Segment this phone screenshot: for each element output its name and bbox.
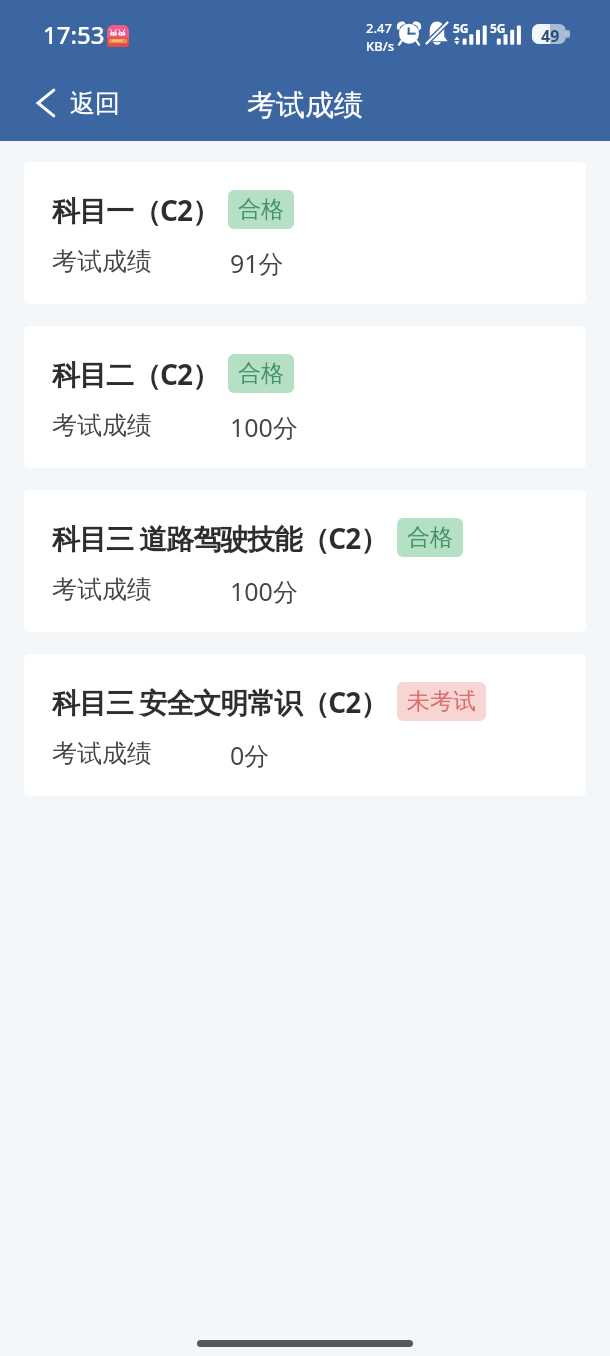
staticText: 49 <box>541 25 560 47</box>
staticText: 考试成绩 <box>52 574 152 605</box>
staticText: 考试成绩 <box>52 246 152 277</box>
staticText: KB/s <box>366 37 395 55</box>
staticText: 100分 <box>230 410 298 444</box>
other: Back <box>34 88 56 118</box>
staticText: 考试成绩 <box>52 738 152 769</box>
staticText: 5G <box>453 20 469 36</box>
staticText: 合格 <box>238 195 284 224</box>
staticText: 返回 <box>70 88 120 119</box>
button[interactable]: 科目一（C2） <box>24 162 586 304</box>
button[interactable]: Back <box>0 65 214 141</box>
staticText: 考试成绩 <box>52 410 152 441</box>
staticText: 科目三 安全文明常识（C2） <box>52 683 388 721</box>
staticText: 未考试 <box>407 687 476 716</box>
staticText: 5G <box>490 20 506 36</box>
staticText: 合格 <box>238 359 284 388</box>
staticText: 2.47 <box>366 19 392 37</box>
button[interactable]: 科目二（C2） <box>24 326 586 468</box>
staticText: 100分 <box>230 574 298 608</box>
button[interactable]: 科目三 安全文明常识（C2） <box>24 654 586 796</box>
staticText: 科目一（C2） <box>52 191 219 229</box>
staticText: 科目二（C2） <box>52 355 219 393</box>
staticText: 合格 <box>407 523 453 552</box>
button[interactable]: 科目三 道路驾驶技能（C2） <box>24 490 586 632</box>
staticText: 科目三 道路驾驶技能（C2） <box>52 519 388 557</box>
staticText: 0分 <box>230 738 270 772</box>
staticText: 考试成绩 <box>247 87 363 124</box>
staticText: 17:53 <box>43 18 105 51</box>
staticText: 91分 <box>230 246 284 280</box>
